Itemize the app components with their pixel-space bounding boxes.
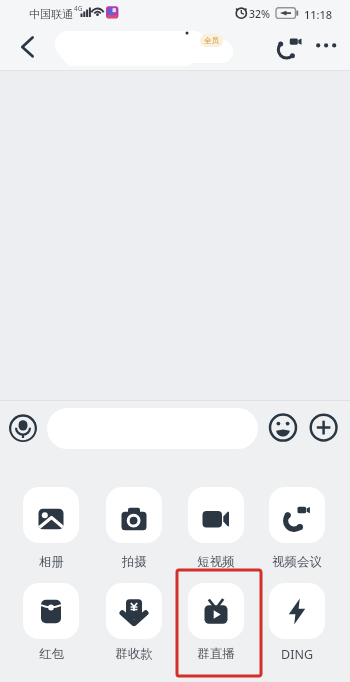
staticText: 群收款 (115, 646, 153, 662)
button[interactable] (268, 413, 298, 443)
staticText: 全员 (204, 36, 219, 45)
staticText: DING (281, 646, 313, 663)
button[interactable] (47, 408, 258, 449)
button[interactable] (106, 583, 162, 639)
staticText: 视频会议 (272, 554, 322, 570)
staticText: 中国联通 (29, 7, 73, 21)
button[interactable] (106, 487, 162, 543)
button[interactable] (269, 583, 325, 639)
button[interactable] (6, 28, 44, 70)
button[interactable] (9, 414, 37, 442)
staticText: 32% (249, 7, 270, 21)
button[interactable]: 全员 (200, 34, 223, 47)
staticText: 相册 (39, 554, 64, 570)
button[interactable] (23, 487, 79, 543)
button[interactable] (269, 487, 325, 543)
staticText: 红包 (39, 646, 64, 662)
button[interactable] (309, 413, 339, 443)
staticText: 群直播 (197, 646, 235, 662)
staticText: 11:18 (304, 7, 333, 22)
button[interactable] (270, 28, 310, 70)
staticText: 短视频 (197, 554, 235, 570)
button[interactable] (188, 583, 244, 639)
button[interactable] (23, 583, 79, 639)
button[interactable] (188, 487, 244, 543)
staticText: 拍摄 (122, 554, 147, 570)
button[interactable] (310, 28, 350, 70)
staticText: 4G (74, 4, 83, 13)
